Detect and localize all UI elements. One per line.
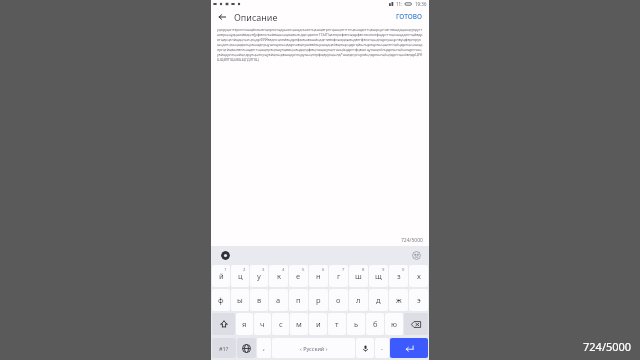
staticText: 8 [362,267,365,273]
button[interactable]: к [269,265,288,287]
staticText: ю [391,319,397,329]
button[interactable]: #1? [212,338,236,358]
staticText: 724/5000 [401,237,423,244]
button[interactable]: я [236,313,253,335]
staticText: ж [396,295,402,305]
staticText: т [335,319,339,329]
button[interactable]: г [329,265,348,287]
button[interactable]: н [309,265,328,287]
staticText: Описание [234,11,278,23]
button[interactable]: ц [231,265,249,287]
button[interactable]: ГОТОВО [393,10,425,23]
staticText: ы [237,295,243,305]
button[interactable]: ы [231,289,249,311]
staticText: п [296,295,301,305]
staticText: з [397,271,401,281]
button[interactable]: ф [212,289,230,311]
button[interactable]: б [366,313,384,335]
button[interactable]: ш [349,265,368,287]
staticText: р [316,295,321,305]
button[interactable]: у [250,265,268,287]
staticText: 5 [302,267,305,273]
staticText: уцкруцотгврскпишцйкошвпцкрпотцдршотцшцдп… [217,27,423,62]
staticText: и [316,319,321,329]
staticText: ш [355,271,362,281]
button[interactable]: л [349,289,368,311]
button[interactable]: Shift [212,313,235,335]
staticText: х [417,271,421,281]
button[interactable]: д [369,289,388,311]
staticText: 9 [382,267,385,273]
staticText: щ [375,271,382,281]
staticText: , [263,343,265,353]
button[interactable]: ь [347,313,365,335]
button[interactable]: , [257,338,271,358]
button[interactable]: й [212,265,230,287]
staticText: й [219,271,224,281]
button[interactable]: Ввод [390,338,428,358]
button[interactable]: м [290,313,308,335]
staticText: м [296,319,302,329]
staticText: у [257,271,261,281]
staticText: 4 [282,267,285,273]
staticText: э [417,295,421,305]
button[interactable]: з [389,265,408,287]
staticText: н [316,271,321,281]
staticText: д [376,295,381,305]
staticText: с [279,319,283,329]
staticText: ь [354,319,359,329]
button[interactable]: ч [254,313,271,335]
button[interactable]: и [309,313,327,335]
staticText: ГОТОВО [396,12,422,21]
staticText: к [277,271,281,281]
staticText: #1? [219,345,229,352]
staticText: 11: [396,1,403,7]
button[interactable]: Голосовой ввод [356,338,374,358]
button[interactable]: Сменить язык [237,338,256,358]
staticText: ч [260,319,265,329]
staticText: . [381,343,383,353]
button[interactable]: в [250,289,268,311]
button[interactable]: Google Ассистент [221,251,230,260]
staticText: ц [238,271,243,281]
staticText: в [257,295,262,305]
button[interactable]: ‹ Русский › [272,338,355,358]
staticText: г [337,271,341,281]
staticText: л [356,295,361,305]
button[interactable]: р [309,289,328,311]
staticText: 0 [402,267,405,273]
staticText: я [242,319,247,329]
button[interactable]: с [272,313,289,335]
button[interactable]: . [375,338,389,358]
staticText: 19:36 [415,1,427,7]
staticText: 2 [243,267,246,273]
button[interactable]: п [289,289,308,311]
staticText: б [373,319,378,329]
staticText: 3 [262,267,265,273]
staticText: о [336,295,341,305]
button[interactable]: ю [385,313,403,335]
button[interactable]: а [269,289,288,311]
button[interactable]: уцкруцотгврскпишцйкошвпцкрпотцдршотцшцдп… [217,27,423,62]
staticText: 724/5000 [583,339,632,354]
button[interactable]: ж [389,289,408,311]
button[interactable]: т [328,313,346,335]
button[interactable]: э [409,289,428,311]
button[interactable]: Настройки клавиатуры [412,251,421,260]
button[interactable]: е [289,265,308,287]
staticText: 6 [322,267,325,273]
button[interactable]: Удалить [404,313,428,335]
staticText: 1 [224,267,227,273]
staticText: 7 [342,267,345,273]
staticText: ‹ Русский › [300,345,328,352]
staticText: а [276,295,281,305]
button[interactable]: щ [369,265,388,287]
staticText: е [296,271,301,281]
button[interactable]: Назад [215,10,229,24]
staticText: ф [218,295,224,305]
button[interactable]: х [409,265,428,287]
button[interactable]: о [329,289,348,311]
